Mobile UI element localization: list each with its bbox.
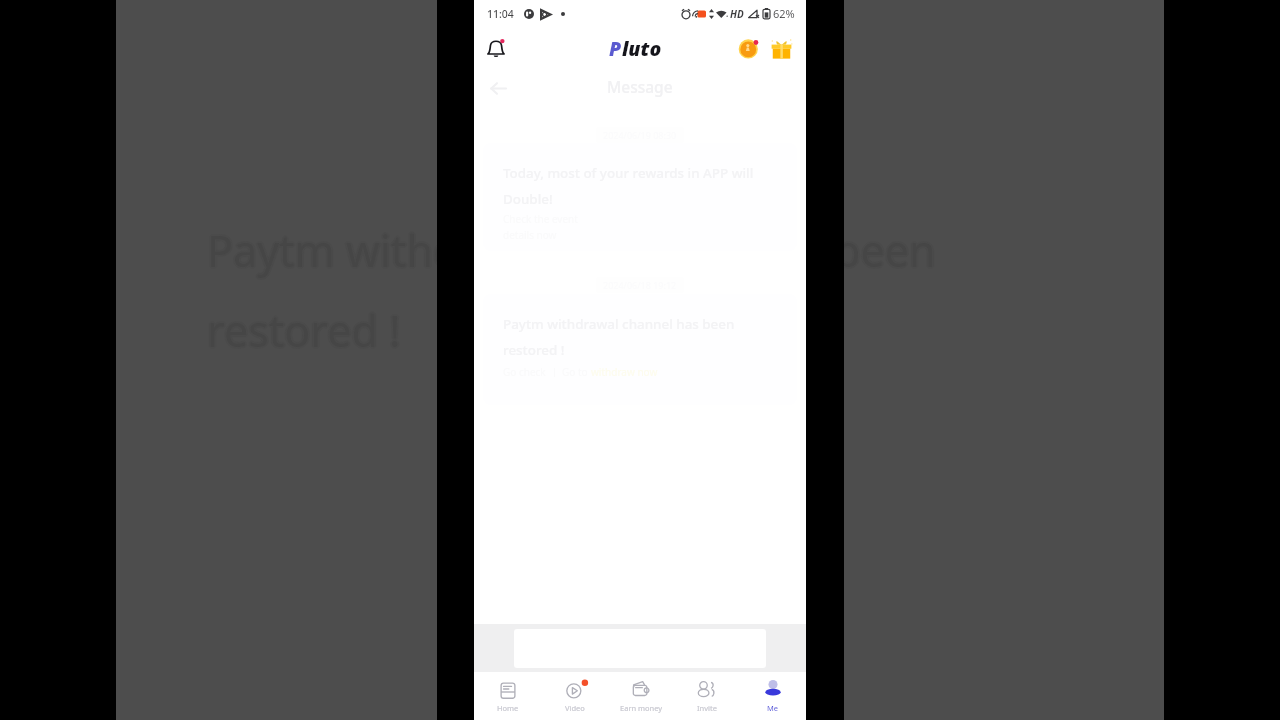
staticText: 62% (773, 6, 795, 21)
staticText: Paytm withdrawal channel has been (206, 220, 935, 279)
staticText: withdraw now (591, 365, 658, 379)
staticText: Paytm withdrawal channel has been (205, 221, 934, 280)
button[interactable]: Invite (674, 672, 740, 720)
staticText: P (609, 35, 622, 62)
staticText: luto (622, 35, 662, 62)
button[interactable]: Earn money (608, 672, 674, 720)
button[interactable]: Me (740, 672, 806, 720)
staticText: Paytm withdrawal channel has been (208, 222, 937, 281)
button[interactable]: Notifications (483, 35, 509, 61)
staticText: Invite (697, 703, 717, 713)
button[interactable]: Back (489, 79, 508, 98)
staticText: Paytm withdrawal channel has been (207, 221, 936, 280)
staticText: Paytm withdrawal channel has been (207, 223, 936, 282)
staticText: HD (730, 7, 744, 21)
button[interactable]: Home (474, 672, 541, 720)
button[interactable]: Video (541, 672, 608, 720)
staticText: Video (565, 703, 585, 713)
staticText: Paytm withdrawal channel has been (208, 220, 937, 279)
staticText: Home (497, 703, 519, 713)
staticText: Paytm withdrawal channel has been (206, 222, 935, 281)
staticText: Me (767, 703, 779, 713)
staticText: Message (607, 76, 673, 97)
button[interactable]: Gift (770, 37, 793, 60)
staticText: Paytm withdrawal channel has been (209, 221, 938, 280)
staticText: Earn money (620, 703, 663, 713)
button[interactable]: Rewards (737, 36, 761, 60)
staticText: 11:04 (487, 7, 514, 21)
staticText: Paytm withdrawal channel has been (207, 219, 936, 278)
